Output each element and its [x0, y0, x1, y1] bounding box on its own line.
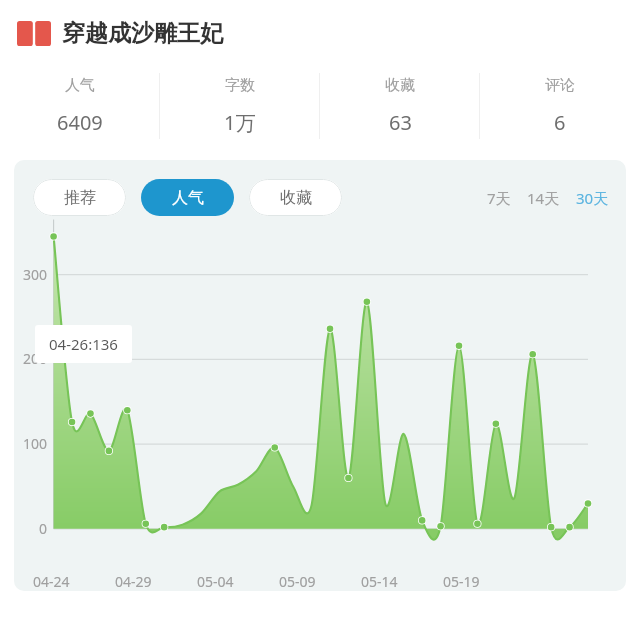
button[interactable]: 人气 — [0, 68, 160, 144]
staticText: 05-04 — [197, 572, 234, 591]
staticText: 200 — [23, 349, 48, 368]
staticText: 收藏 — [385, 76, 415, 95]
staticText: 6 — [554, 109, 566, 136]
staticText: 0 — [39, 519, 48, 538]
staticText: 04-24 — [33, 572, 70, 591]
button[interactable]: 收藏 — [320, 68, 480, 144]
button[interactable]: 推荐 — [33, 179, 126, 216]
staticText: 推荐 — [64, 188, 96, 208]
staticText: 6409 — [57, 109, 103, 136]
button[interactable]: 评论 — [480, 68, 640, 144]
button[interactable]: 30天 — [573, 183, 612, 213]
staticText: 63 — [389, 109, 412, 136]
button[interactable]: 人气 — [141, 179, 234, 216]
staticText: 14天 — [527, 188, 560, 208]
staticText: 人气 — [65, 76, 95, 95]
staticText: 30天 — [576, 188, 609, 208]
button[interactable]: 7天 — [484, 183, 514, 213]
staticText: 100 — [23, 434, 48, 453]
staticText: 字数 — [225, 76, 255, 95]
button[interactable]: 04-26:136 — [35, 325, 132, 363]
staticText: 穿越成沙雕王妃 — [62, 19, 223, 48]
staticText: 05-14 — [361, 572, 398, 591]
button[interactable]: 14天 — [524, 183, 563, 213]
staticText: 1万 — [224, 109, 256, 136]
staticText: 04-26:136 — [49, 334, 118, 354]
staticText: 评论 — [545, 76, 575, 95]
staticText: 7天 — [487, 188, 511, 208]
staticText: 收藏 — [280, 188, 312, 208]
staticText: 04-29 — [115, 572, 152, 591]
other: Book — [17, 21, 51, 46]
staticText: 05-09 — [279, 572, 316, 591]
button[interactable]: 收藏 — [249, 179, 342, 216]
staticText: 300 — [23, 265, 48, 284]
button[interactable]: 字数 — [160, 68, 320, 144]
staticText: 05-19 — [443, 572, 480, 591]
staticText: 人气 — [172, 188, 204, 208]
